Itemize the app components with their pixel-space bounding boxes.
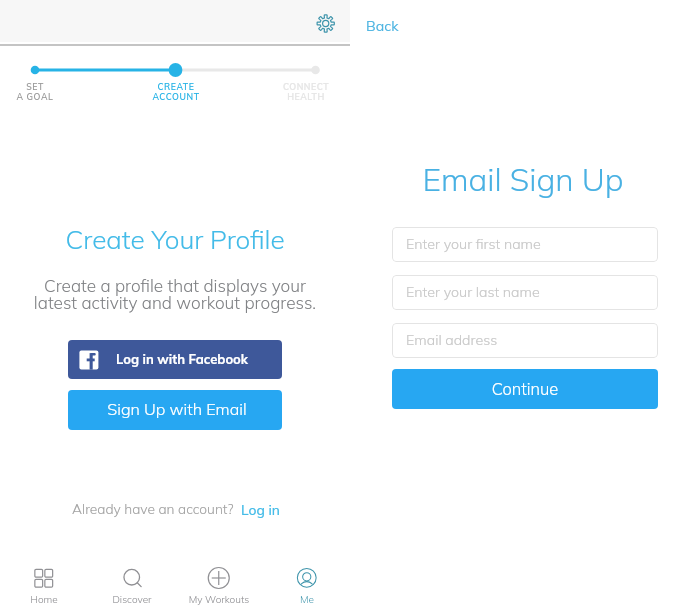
button[interactable]: Discover — [88, 560, 176, 607]
staticText: Me — [263, 593, 351, 606]
staticText: Email Sign Up — [373, 159, 673, 199]
staticText: A GOAL — [0, 91, 105, 102]
button[interactable]: Home — [0, 560, 88, 607]
button[interactable]: Back — [356, 12, 408, 38]
button[interactable]: Continue — [392, 369, 658, 409]
staticText: SET — [0, 81, 105, 92]
staticText: Create Your Profile — [25, 223, 325, 256]
staticText: Enter your last name — [406, 283, 540, 301]
button[interactable]: Sign Up with Email — [68, 390, 282, 430]
staticText: Create a profile that displays your — [25, 275, 325, 297]
staticText: HEALTH — [236, 91, 376, 102]
staticText: latest activity and workout progress. — [25, 292, 325, 314]
button[interactable]: Log in with Facebook — [68, 340, 282, 379]
button[interactable]: Log in — [238, 500, 284, 520]
button[interactable]: Me — [263, 560, 351, 607]
staticText: CREATE — [106, 81, 246, 92]
staticText: Log in — [241, 501, 280, 518]
button[interactable]: Enter your last name — [392, 275, 658, 310]
button[interactable]: Settings — [311, 9, 340, 38]
button[interactable]: Email address — [392, 323, 658, 358]
staticText: Continue — [392, 378, 658, 399]
staticText: Sign Up with Email — [70, 399, 282, 419]
button[interactable]: My Workouts — [175, 560, 263, 607]
button[interactable]: Enter your first name — [392, 227, 658, 262]
staticText: Log in with Facebook — [116, 351, 248, 367]
staticText: Enter your first name — [406, 235, 541, 253]
staticText: Discover — [88, 593, 176, 606]
staticText: Email address — [406, 331, 498, 349]
staticText: Already have an account? — [72, 500, 234, 517]
staticText: My Workouts — [175, 593, 263, 606]
staticText: Home — [0, 593, 88, 606]
staticText: ACCOUNT — [106, 91, 246, 102]
staticText: CONNECT — [236, 81, 376, 92]
staticText: Back — [366, 17, 399, 35]
